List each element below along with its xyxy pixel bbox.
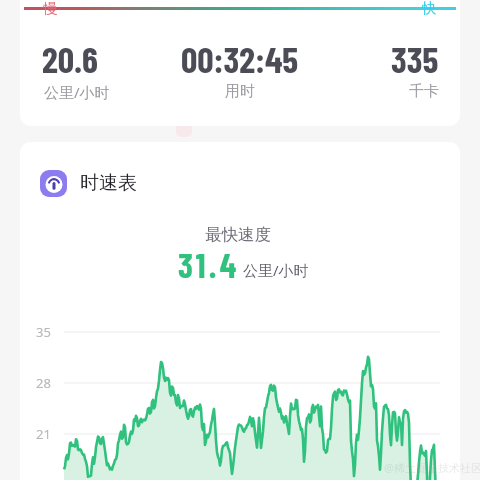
- other: Speedometer: [40, 170, 67, 197]
- staticText: 28: [36, 374, 51, 392]
- button[interactable]: [20, 142, 460, 480]
- staticText: 公里/小时: [44, 82, 110, 102]
- staticText: 公里/小时: [243, 260, 309, 280]
- button[interactable]: 335: [335, 37, 480, 99]
- button[interactable]: 20.6: [0, 37, 150, 99]
- staticText: @稀土掘金技术社区: [384, 460, 480, 475]
- staticText: 35: [36, 323, 51, 341]
- staticText: 20.6: [42, 37, 98, 80]
- staticText: 31.4: [178, 244, 240, 285]
- staticText: 21: [36, 425, 51, 443]
- staticText: 335: [391, 37, 439, 80]
- staticText: 最快速度: [0, 224, 478, 245]
- staticText: 千卡: [409, 82, 439, 101]
- staticText: 慢: [43, 0, 58, 17]
- button[interactable]: Speedometer: [40, 169, 150, 197]
- staticText: 用时: [225, 82, 255, 101]
- staticText: 时速表: [80, 171, 137, 195]
- button[interactable]: 00:32:45: [160, 37, 320, 99]
- staticText: 00:32:45: [181, 37, 299, 80]
- staticText: 快: [422, 0, 437, 17]
- button[interactable]: [20, 0, 460, 126]
